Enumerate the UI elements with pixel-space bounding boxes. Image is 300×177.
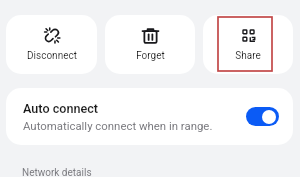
button[interactable]: Auto connect toggle xyxy=(246,107,279,126)
button[interactable]: Forget xyxy=(105,15,195,74)
button[interactable]: Share xyxy=(203,15,293,74)
button[interactable]: Auto connect xyxy=(6,88,293,145)
staticText: Automatically connect when in range. xyxy=(23,119,213,132)
staticText: Network details xyxy=(22,167,92,177)
button[interactable]: Disconnect xyxy=(6,15,97,74)
staticText: Auto connect xyxy=(23,101,99,116)
staticText: Share xyxy=(235,50,261,62)
staticText: Forget xyxy=(136,50,165,62)
staticText: Disconnect xyxy=(27,50,77,62)
